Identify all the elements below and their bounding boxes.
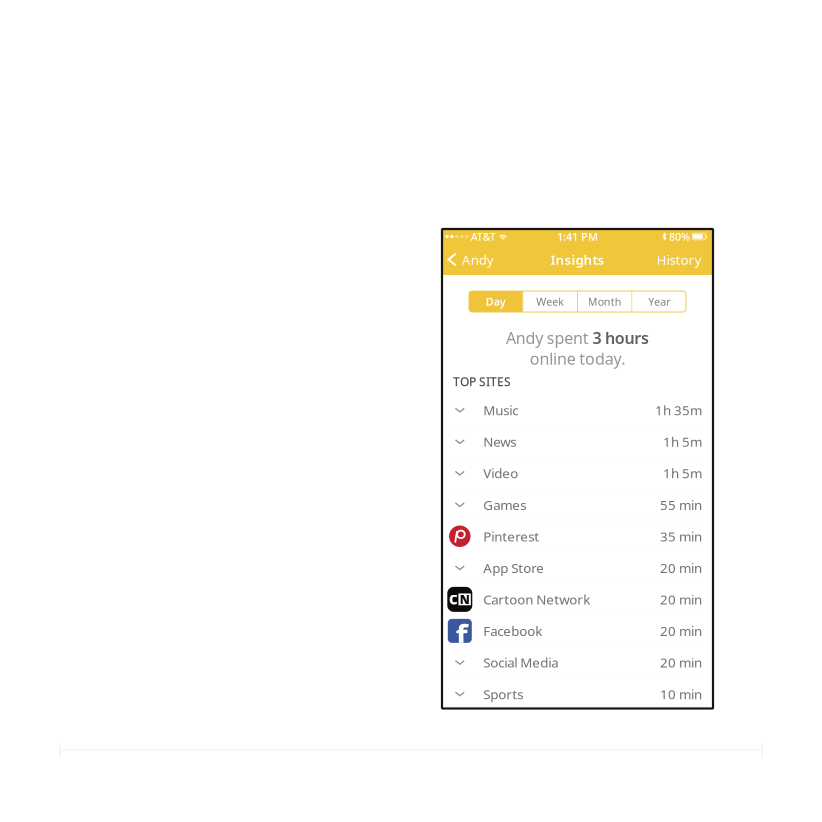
button[interactable]: Pinterest (442, 520, 713, 552)
staticText: N (460, 591, 470, 607)
staticText: Social Media (483, 654, 558, 671)
staticText: 1h 5m (663, 464, 702, 482)
staticText: 55 min (660, 496, 702, 514)
staticText: Video (483, 464, 518, 482)
button[interactable]: Social Media (442, 647, 713, 678)
staticText: App Store (483, 559, 544, 577)
staticText: 80% (669, 229, 690, 244)
button[interactable]: App Store (442, 552, 713, 583)
staticText: 20 min (660, 622, 702, 640)
staticText: 35 min (660, 527, 702, 545)
button[interactable]: Year (632, 291, 686, 312)
staticText: Insights (550, 251, 604, 268)
staticText: 20 min (660, 654, 702, 671)
button[interactable]: f (442, 615, 713, 647)
button[interactable]: History (648, 246, 713, 272)
staticText: TOP SITES (453, 374, 511, 389)
button[interactable]: Music (442, 394, 713, 426)
staticText: Pinterest (483, 527, 539, 545)
staticText: Year (648, 294, 670, 309)
button[interactable]: Video (442, 457, 713, 489)
staticText: News (483, 433, 516, 450)
staticText: 3 hours (592, 327, 649, 348)
button[interactable]: News (442, 426, 713, 457)
button[interactable]: Day (469, 291, 523, 312)
staticText: 20 min (660, 559, 702, 577)
staticText: Week (536, 294, 564, 309)
staticText: AT&T (471, 229, 496, 244)
button[interactable]: C (442, 584, 713, 615)
staticText: Games (483, 496, 526, 514)
button[interactable]: Sports (442, 678, 713, 710)
staticText: Day (486, 294, 506, 309)
staticText: 1h 5m (663, 433, 702, 450)
staticText: 1h 35m (655, 401, 702, 419)
staticText: Andy spent (506, 327, 592, 348)
staticText: Month (588, 294, 622, 309)
staticText: Music (483, 401, 518, 419)
staticText: Cartoon Network (483, 590, 590, 608)
staticText: 1:41 PM (557, 229, 598, 244)
staticText: online today. (530, 348, 625, 369)
staticText: f (456, 615, 468, 655)
button[interactable]: Games (442, 489, 713, 520)
staticText: 20 min (660, 590, 702, 608)
button[interactable]: Week (523, 291, 577, 312)
staticText: Facebook (483, 622, 542, 640)
staticText: C (449, 590, 458, 608)
button[interactable]: Andy (442, 246, 502, 272)
staticText: 10 min (660, 685, 702, 703)
staticText: Sports (483, 685, 523, 703)
staticText: Andy (462, 251, 494, 268)
staticText: History (656, 251, 701, 268)
button[interactable]: Month (578, 291, 632, 312)
